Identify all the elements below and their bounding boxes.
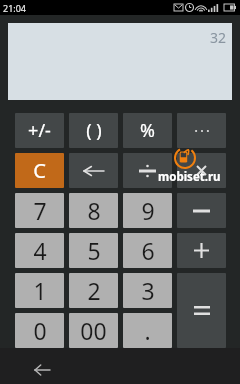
button[interactable]: 7 (15, 193, 64, 228)
staticText: . (144, 315, 151, 346)
button[interactable]: ( ) (69, 113, 118, 148)
button[interactable]: 6 (123, 233, 172, 268)
button[interactable]: Equals (177, 273, 226, 348)
button[interactable]: . (123, 313, 172, 348)
staticText: C (33, 157, 46, 184)
button[interactable]: Multiply (177, 153, 226, 188)
button[interactable]: Plus (177, 233, 226, 268)
button[interactable]: 0 (15, 313, 64, 348)
button[interactable]: Back (27, 356, 57, 384)
button[interactable]: 1 (15, 273, 64, 308)
button[interactable]: % (123, 113, 172, 148)
button[interactable]: Backspace (69, 153, 118, 188)
staticText: 3 (141, 275, 155, 306)
staticText: 9 (141, 195, 155, 226)
button[interactable]: 4 (15, 233, 64, 268)
button[interactable]: +/- (15, 113, 64, 148)
staticText: 5 (87, 235, 101, 266)
staticText: 32 (210, 28, 227, 47)
staticText: ( ) (86, 118, 102, 143)
staticText: 0 (33, 315, 47, 346)
button[interactable]: 5 (69, 233, 118, 268)
button[interactable]: 2 (69, 273, 118, 308)
button[interactable]: C (15, 153, 64, 188)
button[interactable]: 3 (123, 273, 172, 308)
button[interactable]: 9 (123, 193, 172, 228)
staticText: 2 (87, 275, 101, 306)
staticText: mobiset.ru (158, 169, 221, 185)
button[interactable]: 8 (69, 193, 118, 228)
button[interactable]: Minus (177, 193, 226, 228)
staticText: +/- (28, 118, 51, 143)
button[interactable]: More (177, 113, 226, 148)
button[interactable]: 00 (69, 313, 118, 348)
button[interactable]: Divide (123, 153, 172, 188)
staticText: 21:04 (3, 2, 27, 14)
staticText: % (140, 118, 155, 143)
staticText: 00 (80, 315, 107, 346)
staticText: 4 (33, 235, 47, 266)
staticText: 1 (33, 275, 47, 306)
staticText: 8 (87, 195, 101, 226)
staticText: 7 (33, 195, 47, 226)
staticText: 6 (141, 235, 155, 266)
